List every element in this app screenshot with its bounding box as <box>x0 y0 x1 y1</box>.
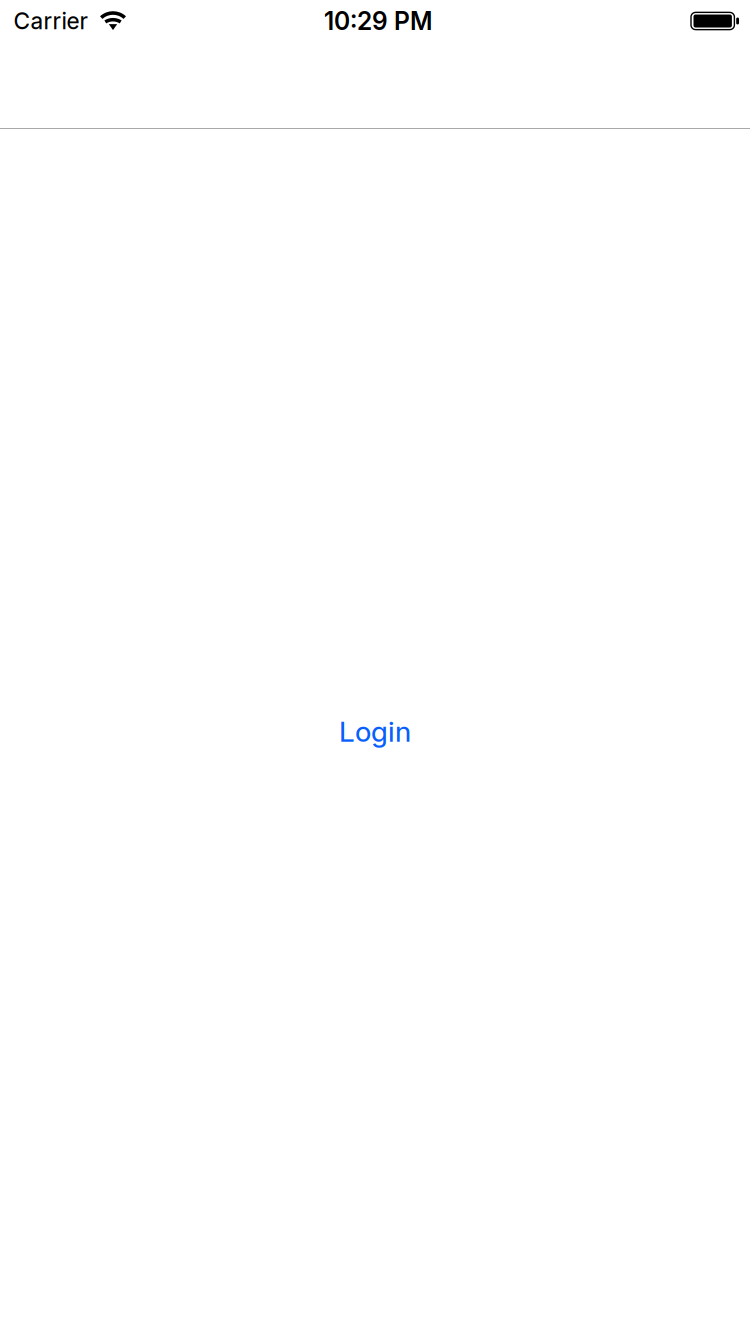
staticText: Carrier <box>13 7 87 35</box>
button[interactable]: Login <box>323 705 427 758</box>
staticText: 10:29 PM <box>324 6 432 36</box>
staticText: Login <box>339 715 411 748</box>
